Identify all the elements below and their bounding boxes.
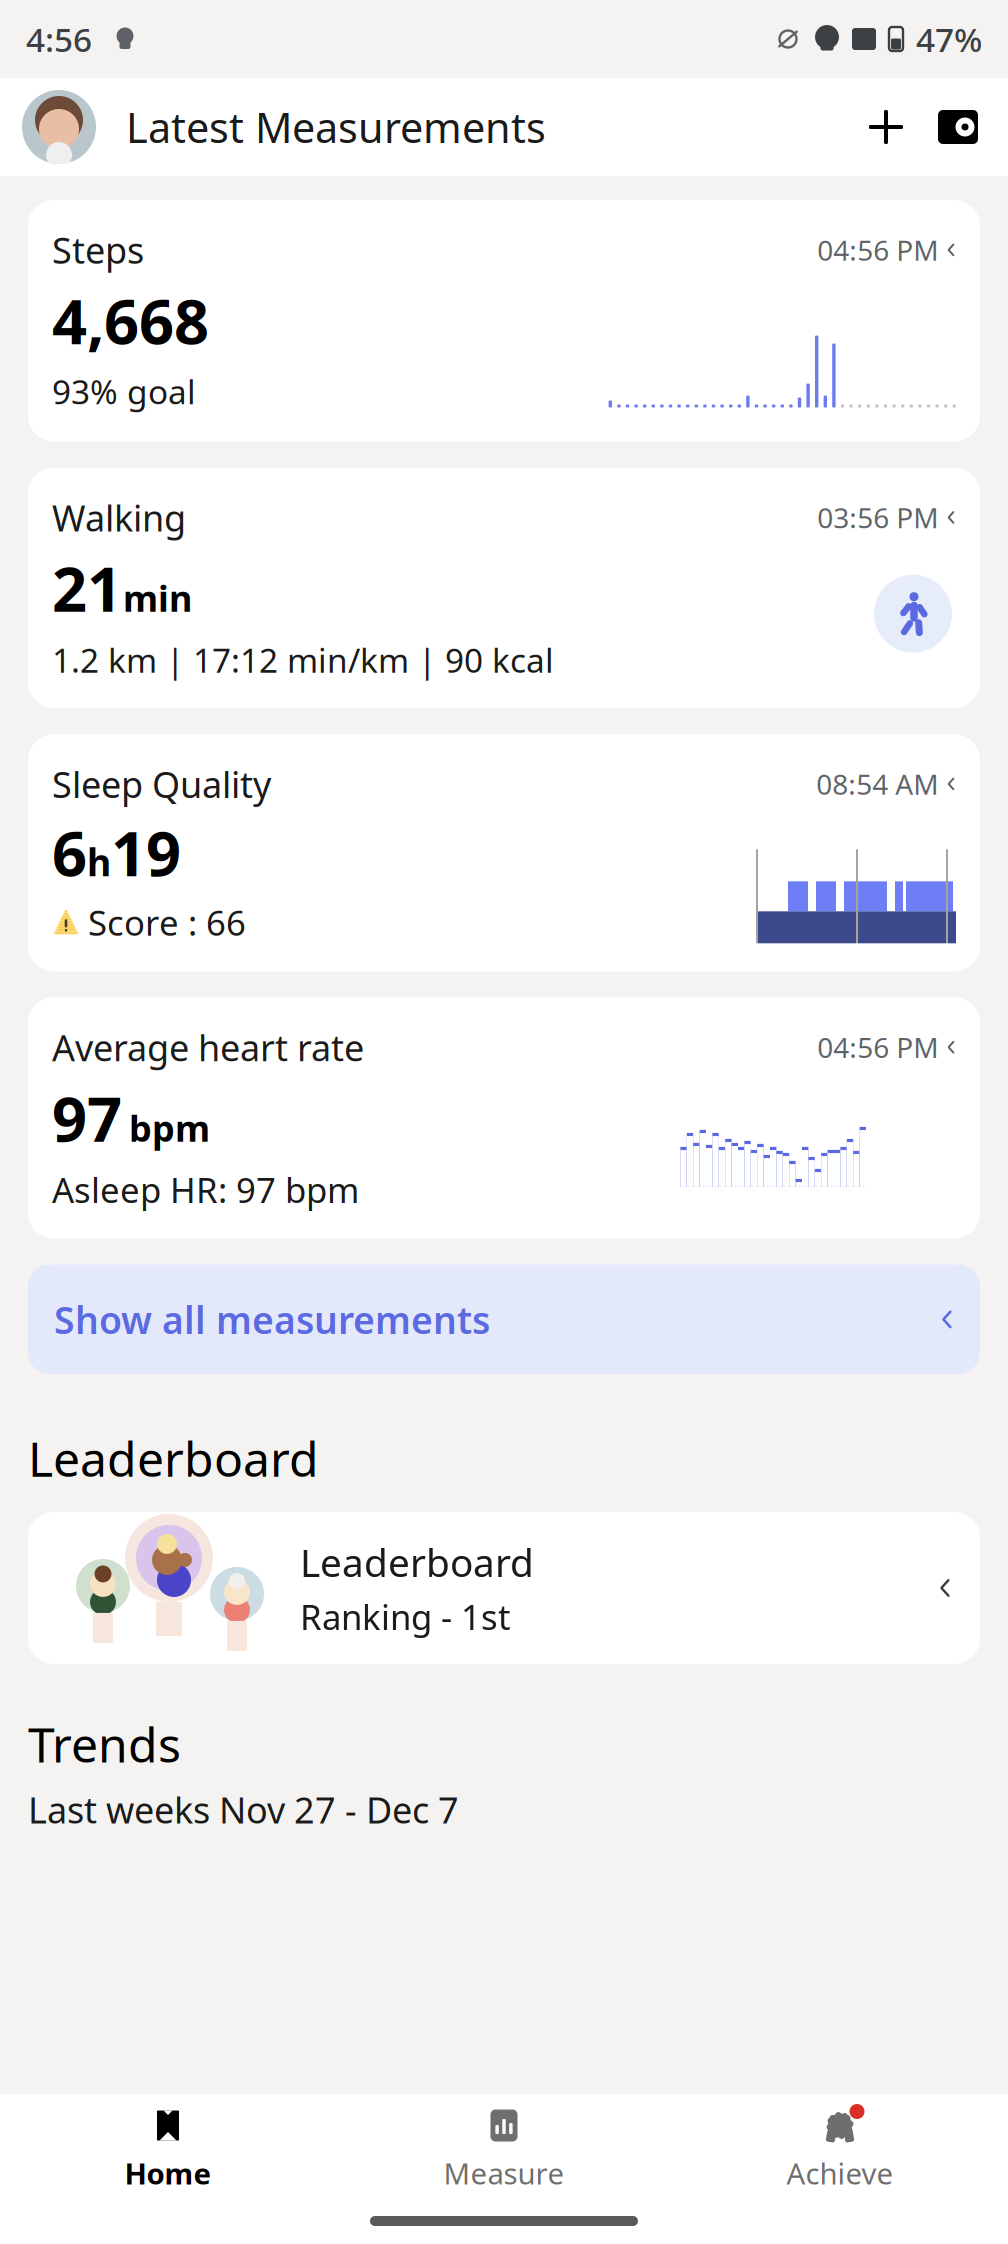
staticText: Latest Measurements — [126, 100, 546, 154]
staticText: 4:56 — [26, 17, 92, 61]
staticText: Home — [124, 2153, 211, 2192]
staticText: Leaderboard — [28, 1426, 319, 1490]
staticText: min — [123, 574, 192, 622]
staticText: 04:56 PM — [817, 1029, 938, 1066]
button[interactable]: Walking — [28, 467, 980, 708]
staticText: 1.2 km | 17:12 min/km | 90 kcal — [52, 638, 554, 682]
staticText: 97 — [52, 1077, 122, 1158]
staticText: Score : 66 — [88, 899, 246, 945]
button[interactable]: Profile — [22, 90, 96, 164]
staticText: 19 — [111, 812, 181, 893]
staticText: Achieve — [786, 2153, 893, 2192]
staticText: Sleep Quality — [52, 760, 271, 808]
button[interactable]: Leaderboard — [28, 1512, 980, 1664]
staticText: 04:56 PM — [817, 231, 938, 268]
button[interactable]: Home — [0, 2093, 336, 2202]
staticText: h — [87, 837, 111, 887]
staticText: 47% — [916, 17, 982, 61]
staticText: Steps — [52, 226, 144, 274]
staticText: 6 — [52, 812, 87, 893]
staticText: Ranking - 1st — [300, 1594, 511, 1640]
button[interactable]: Scan — [930, 102, 986, 152]
staticText: Show all measurements — [54, 1295, 490, 1344]
staticText: Measure — [443, 2153, 564, 2192]
staticText: Last weeks Nov 27 - Dec 7 — [28, 1786, 459, 1833]
staticText: Walking — [52, 493, 186, 541]
button[interactable]: Show all measurements — [28, 1265, 980, 1374]
staticText: Leaderboard — [300, 1536, 534, 1587]
button[interactable]: Steps — [28, 200, 980, 441]
staticText: bpm — [129, 1104, 210, 1152]
staticText: Asleep HR: 97 bpm — [52, 1167, 359, 1213]
button[interactable]: Achieve — [672, 2093, 1008, 2202]
staticText: 21 — [52, 547, 122, 629]
staticText: 93% goal — [52, 369, 196, 414]
button[interactable]: Add measurement — [856, 97, 916, 157]
staticText: 08:54 AM — [816, 765, 938, 803]
staticText: Average heart rate — [52, 1023, 364, 1071]
button[interactable]: Measure — [336, 2093, 672, 2202]
staticText: 4,668 — [52, 280, 209, 361]
button[interactable]: Average heart rate — [28, 997, 980, 1239]
staticText: Trends — [28, 1712, 181, 1776]
staticText: 03:56 PM — [817, 499, 938, 536]
button[interactable]: Sleep Quality — [28, 734, 980, 971]
